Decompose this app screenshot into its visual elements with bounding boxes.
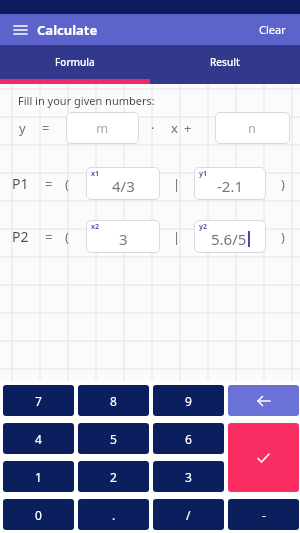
staticText: x2: [91, 222, 100, 232]
staticText: =: [45, 228, 53, 246]
button[interactable]: m: [66, 112, 139, 144]
button[interactable]: 4: [3, 423, 74, 454]
button[interactable]: /: [153, 499, 224, 530]
staticText: Clear: [259, 22, 286, 37]
staticText: |: [173, 175, 181, 193]
staticText: x1: [91, 169, 100, 179]
staticText: 1: [35, 469, 42, 485]
button[interactable]: [0, 14, 40, 45]
staticText: 4/3: [112, 176, 135, 196]
staticText: n: [248, 119, 257, 137]
button[interactable]: [228, 423, 299, 492]
staticText: .: [112, 507, 116, 523]
staticText: 7: [35, 393, 42, 409]
staticText: P2: [12, 227, 29, 246]
button[interactable]: y2: [194, 220, 266, 253]
button[interactable]: 3: [153, 461, 224, 492]
staticText: y1: [199, 169, 208, 179]
staticText: 9: [185, 393, 192, 409]
staticText: 2: [110, 469, 117, 485]
button[interactable]: 7: [3, 385, 74, 416]
staticText: Fill in your given numbers:: [18, 93, 155, 108]
button[interactable]: 1: [3, 461, 74, 492]
staticText: x: [171, 119, 178, 137]
staticText: P1: [12, 174, 29, 193]
staticText: Calculate: [37, 21, 98, 39]
staticText: Result: [210, 55, 240, 69]
button[interactable]: x2: [86, 220, 160, 253]
staticText: m: [96, 119, 109, 137]
staticText: |: [173, 228, 181, 246]
button[interactable]: Result: [150, 45, 300, 84]
staticText: 5.6/5: [211, 229, 247, 249]
button[interactable]: 6: [153, 423, 224, 454]
button[interactable]: [228, 385, 299, 416]
button[interactable]: x1: [86, 167, 160, 200]
button[interactable]: -: [228, 499, 299, 530]
staticText: y2: [199, 222, 208, 232]
staticText: /: [186, 507, 191, 523]
staticText: Formula: [55, 55, 95, 69]
button[interactable]: 2: [78, 461, 149, 492]
staticText: ): [281, 175, 285, 193]
staticText: y: [19, 119, 26, 137]
staticText: 5: [110, 431, 117, 447]
staticText: 3: [119, 229, 128, 249]
staticText: 3: [185, 469, 192, 485]
button[interactable]: 5: [78, 423, 149, 454]
staticText: 0: [35, 507, 42, 523]
staticText: (: [65, 175, 69, 193]
staticText: =: [45, 175, 53, 193]
staticText: 4: [35, 431, 42, 447]
button[interactable]: .: [78, 499, 149, 530]
button[interactable]: 8: [78, 385, 149, 416]
staticText: ): [281, 228, 285, 246]
staticText: 8: [110, 393, 117, 409]
button[interactable]: n: [215, 112, 290, 144]
staticText: -2.1: [217, 176, 244, 196]
button[interactable]: y1: [194, 167, 266, 200]
staticText: -: [262, 507, 266, 523]
button[interactable]: 9: [153, 385, 224, 416]
staticText: +: [184, 119, 192, 137]
staticText: ·: [151, 119, 155, 137]
staticText: 6: [185, 431, 192, 447]
button[interactable]: Clear: [259, 14, 300, 45]
button[interactable]: Formula: [0, 45, 150, 84]
staticText: =: [42, 119, 50, 137]
staticText: (: [65, 228, 69, 246]
button[interactable]: 0: [3, 499, 74, 530]
